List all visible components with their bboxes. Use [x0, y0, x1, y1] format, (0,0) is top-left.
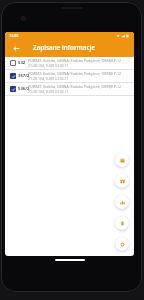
button[interactable]: 532 [5, 57, 134, 69]
button[interactable]: Archive [115, 153, 129, 167]
button[interactable]: Chart [115, 195, 129, 209]
staticText: 14:30 [9, 33, 19, 38]
staticText: POWIAT: Kraków, GMINA: Kraków-Podgórze, … [28, 71, 122, 76]
button[interactable]: Note [115, 216, 129, 230]
staticText: Zapisane informacje [33, 43, 95, 52]
staticText: 21:28.104, 9.0013.332.11 [28, 76, 69, 81]
button[interactable]: Store [115, 174, 129, 188]
staticText: POWIAT: Kraków, GMINA: Kraków-Podgórze, … [28, 58, 122, 63]
button[interactable]: Back [9, 39, 24, 57]
staticText: 21:28.104, 9.0013.332.11 [28, 89, 69, 94]
staticText: 21:28.104, 9.0013.332.11 [28, 63, 69, 68]
staticText: POWIAT: Kraków, GMINA: Kraków-Podgórze, … [28, 84, 122, 89]
button[interactable]: Settings [115, 237, 129, 251]
button[interactable]: 357/2 [5, 70, 134, 82]
staticText: 357/2 [18, 73, 30, 79]
button[interactable]: 536/2 [5, 83, 134, 95]
staticText: 536/2 [18, 86, 30, 92]
staticText: 532 [18, 60, 26, 66]
